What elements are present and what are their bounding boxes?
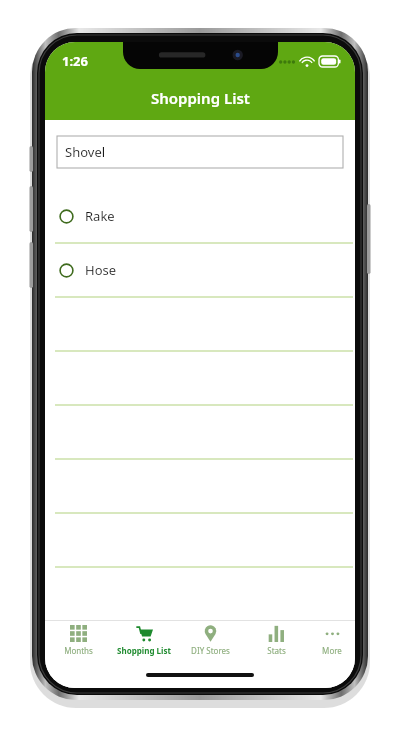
staticText: Shopping List [117,645,171,656]
button[interactable]: More [309,620,355,666]
staticText: Hose [85,261,117,279]
staticText: Months [64,645,93,656]
staticText: Rake [85,207,115,225]
staticText: DIY Stores [191,645,230,656]
button[interactable]: Shovel [57,136,343,168]
button[interactable]: Months [45,620,111,666]
staticText: Stats [267,645,286,656]
button[interactable]: Rake [45,190,355,244]
button[interactable]: Shopping List [111,620,177,666]
staticText: Shovel [65,143,106,161]
staticText: Shopping List [151,88,250,108]
button[interactable]: Hose [45,244,355,298]
button[interactable]: Stats [243,620,309,666]
staticText: More [322,645,342,656]
staticText: 1:26 [62,52,88,70]
button[interactable]: DIY Stores [177,620,243,666]
